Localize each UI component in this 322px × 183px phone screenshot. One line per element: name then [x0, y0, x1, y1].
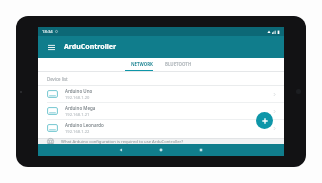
staticText: 192.168.1.22: [65, 129, 90, 135]
button[interactable]: Open navigation drawer: [44, 40, 58, 54]
button[interactable]: What Arduino configuration is required t…: [38, 139, 284, 144]
button[interactable]: Arduino Uno: [38, 86, 284, 102]
staticText: NETWORK: [131, 61, 154, 67]
button[interactable]: Recent apps: [181, 144, 221, 156]
button[interactable]: NETWORK: [125, 58, 159, 70]
staticText: Device list: [47, 76, 68, 82]
staticText: 192.168.1.20: [65, 95, 90, 101]
staticText: BLUETOOTH: [165, 61, 192, 67]
button[interactable]: Back: [101, 144, 141, 156]
staticText: 18:34: [42, 29, 53, 35]
staticText: Arduino Leonardo: [65, 122, 104, 128]
staticText: Arduino Uno: [65, 88, 93, 94]
staticText: What Arduino configuration is required t…: [61, 139, 184, 144]
button[interactable]: Add device: [256, 112, 273, 129]
staticText: ArduController: [64, 42, 117, 52]
button[interactable]: Home: [141, 144, 181, 156]
button[interactable]: Arduino Leonardo: [38, 120, 284, 136]
staticText: 192.168.1.21: [65, 112, 90, 118]
staticText: Arduino Mega: [65, 105, 96, 111]
button[interactable]: Arduino Mega: [38, 103, 284, 119]
button[interactable]: BLUETOOTH: [159, 58, 197, 70]
